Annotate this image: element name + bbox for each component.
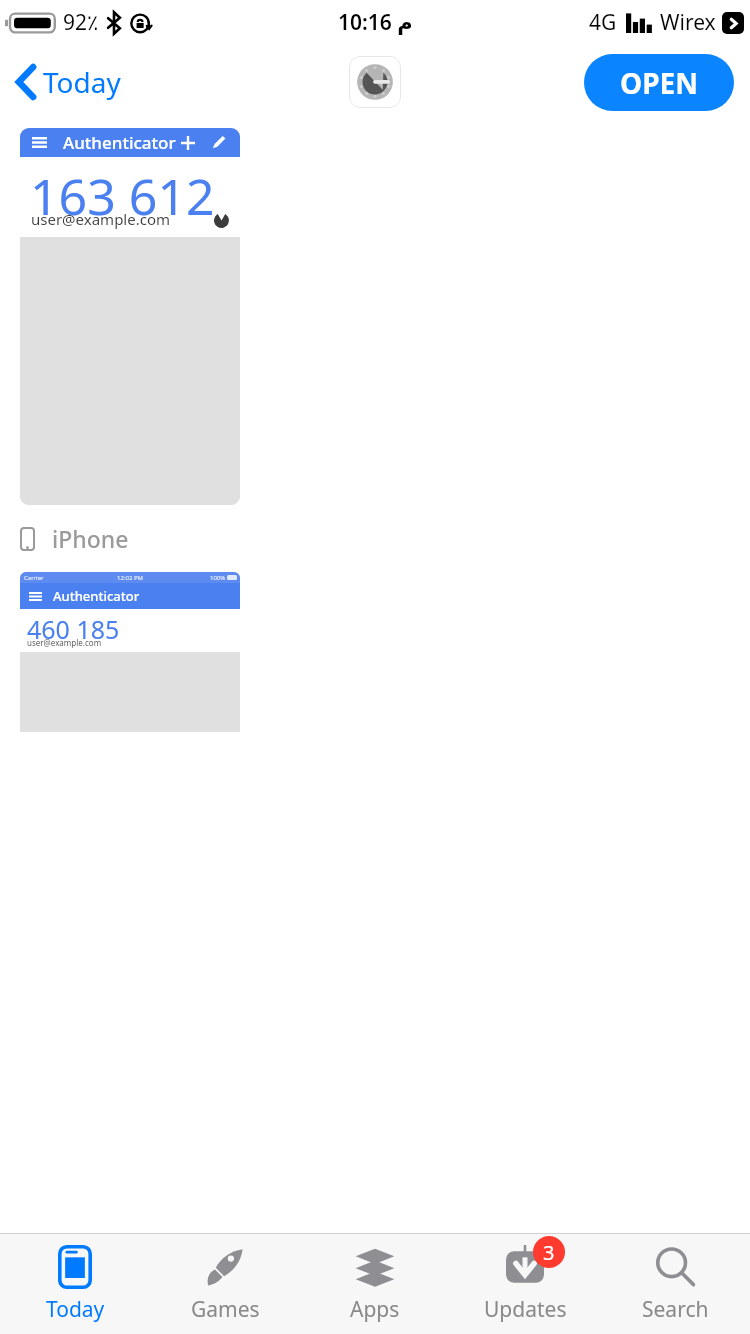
button[interactable]: Carrier: [20, 572, 240, 732]
staticText: iPhone: [52, 523, 129, 554]
button[interactable]: Today: [0, 1234, 150, 1334]
staticText: OPEN: [620, 64, 698, 102]
staticText: user@example.com: [27, 637, 102, 648]
button[interactable]: Search: [600, 1234, 750, 1334]
staticText: Carrier: [24, 574, 44, 582]
button[interactable]: Games: [150, 1234, 300, 1334]
button[interactable]: Apps: [300, 1234, 450, 1334]
button[interactable]: Today: [10, 57, 127, 107]
staticText: 163 612: [30, 162, 215, 230]
button[interactable]: 3: [450, 1234, 600, 1334]
staticText: 4G: [589, 8, 617, 37]
staticText: Search: [642, 1295, 709, 1324]
staticText: م 10:16: [338, 8, 413, 37]
staticText: 92٪: [63, 8, 99, 37]
staticText: Authenticator: [53, 587, 140, 605]
staticText: Today: [43, 63, 121, 101]
staticText: Wirex: [660, 8, 716, 37]
staticText: Today: [46, 1295, 105, 1324]
button[interactable]: Authenticator app icon: [349, 56, 401, 108]
staticText: Apps: [350, 1295, 400, 1324]
staticText: user@example.com: [31, 209, 171, 229]
button[interactable]: OPEN: [584, 54, 734, 111]
button[interactable]: Authenticator: [20, 128, 240, 505]
staticText: 100%: [210, 574, 226, 582]
staticText: Updates: [484, 1295, 567, 1324]
staticText: Games: [191, 1295, 260, 1324]
staticText: 12:02 PM: [117, 574, 143, 582]
staticText: 460 185: [27, 612, 120, 646]
staticText: Authenticator: [63, 131, 176, 154]
staticText: 3: [543, 1239, 555, 1266]
